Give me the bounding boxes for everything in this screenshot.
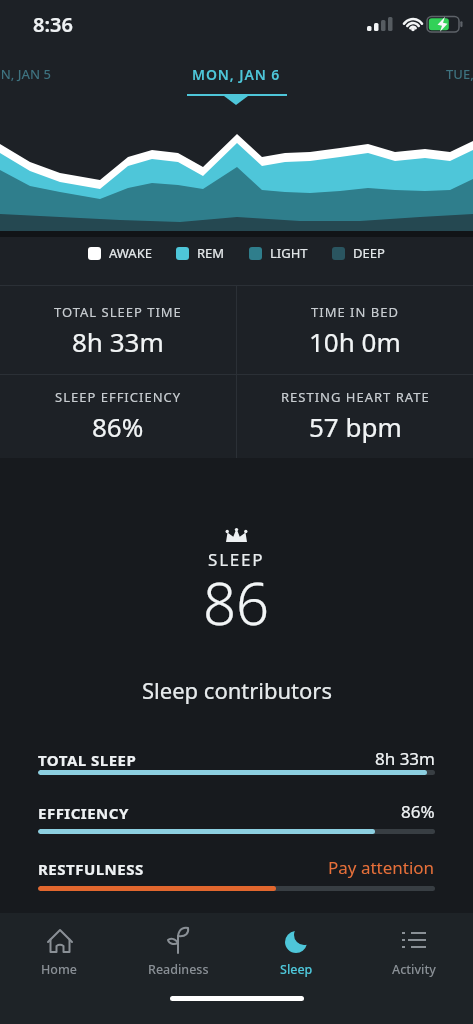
staticText: DEEP bbox=[353, 244, 385, 262]
button[interactable]: Readiness bbox=[119, 927, 237, 978]
button[interactable]: EFFICIENCY bbox=[38, 800, 435, 834]
button[interactable]: TOTAL SLEEP bbox=[38, 747, 435, 775]
staticText: 8h 33m bbox=[72, 324, 164, 359]
staticText: Home bbox=[41, 961, 78, 978]
button[interactable]: SUN, JAN 5 bbox=[0, 65, 51, 83]
staticText: 10h 0m bbox=[309, 324, 401, 359]
staticText: Pay attention bbox=[328, 856, 435, 879]
button[interactable]: RESTING HEART RATE bbox=[237, 388, 473, 458]
staticText: EFFICIENCY bbox=[38, 803, 129, 823]
staticText: TIME IN BED bbox=[311, 303, 399, 321]
staticText: 86% bbox=[92, 409, 144, 444]
button[interactable]: Activity bbox=[355, 927, 473, 978]
button[interactable]: RESTFULNESS bbox=[38, 856, 435, 891]
staticText: 8h 33m bbox=[375, 747, 435, 770]
staticText: AWAKE bbox=[109, 244, 152, 262]
staticText: 8:36 bbox=[33, 11, 73, 38]
button[interactable]: SLEEP EFFICIENCY bbox=[0, 388, 236, 458]
staticText: Sleep contributors bbox=[142, 675, 332, 705]
staticText: RESTFULNESS bbox=[38, 859, 144, 879]
staticText: Readiness bbox=[148, 961, 209, 978]
staticText: Activity bbox=[392, 961, 436, 978]
button[interactable]: Sleep bbox=[237, 927, 355, 978]
button[interactable]: MON, JAN 6 bbox=[192, 65, 281, 84]
staticText: SLEEP bbox=[208, 548, 265, 571]
staticText: LIGHT bbox=[270, 244, 308, 262]
staticText: RESTING HEART RATE bbox=[281, 388, 430, 406]
staticText: REM bbox=[197, 244, 225, 262]
staticText: TOTAL SLEEP TIME bbox=[54, 303, 182, 321]
staticText: 86 bbox=[203, 563, 270, 642]
staticText: SLEEP EFFICIENCY bbox=[55, 388, 182, 406]
staticText: Sleep bbox=[280, 961, 313, 978]
button[interactable]: TUE, JAN 7 bbox=[446, 65, 473, 83]
button[interactable]: TIME IN BED bbox=[237, 303, 473, 374]
staticText: 57 bpm bbox=[309, 409, 402, 444]
staticText: 86% bbox=[401, 800, 435, 823]
button[interactable]: TOTAL SLEEP TIME bbox=[0, 303, 236, 374]
staticText: TOTAL SLEEP bbox=[38, 750, 137, 770]
button[interactable]: Home bbox=[0, 927, 119, 978]
